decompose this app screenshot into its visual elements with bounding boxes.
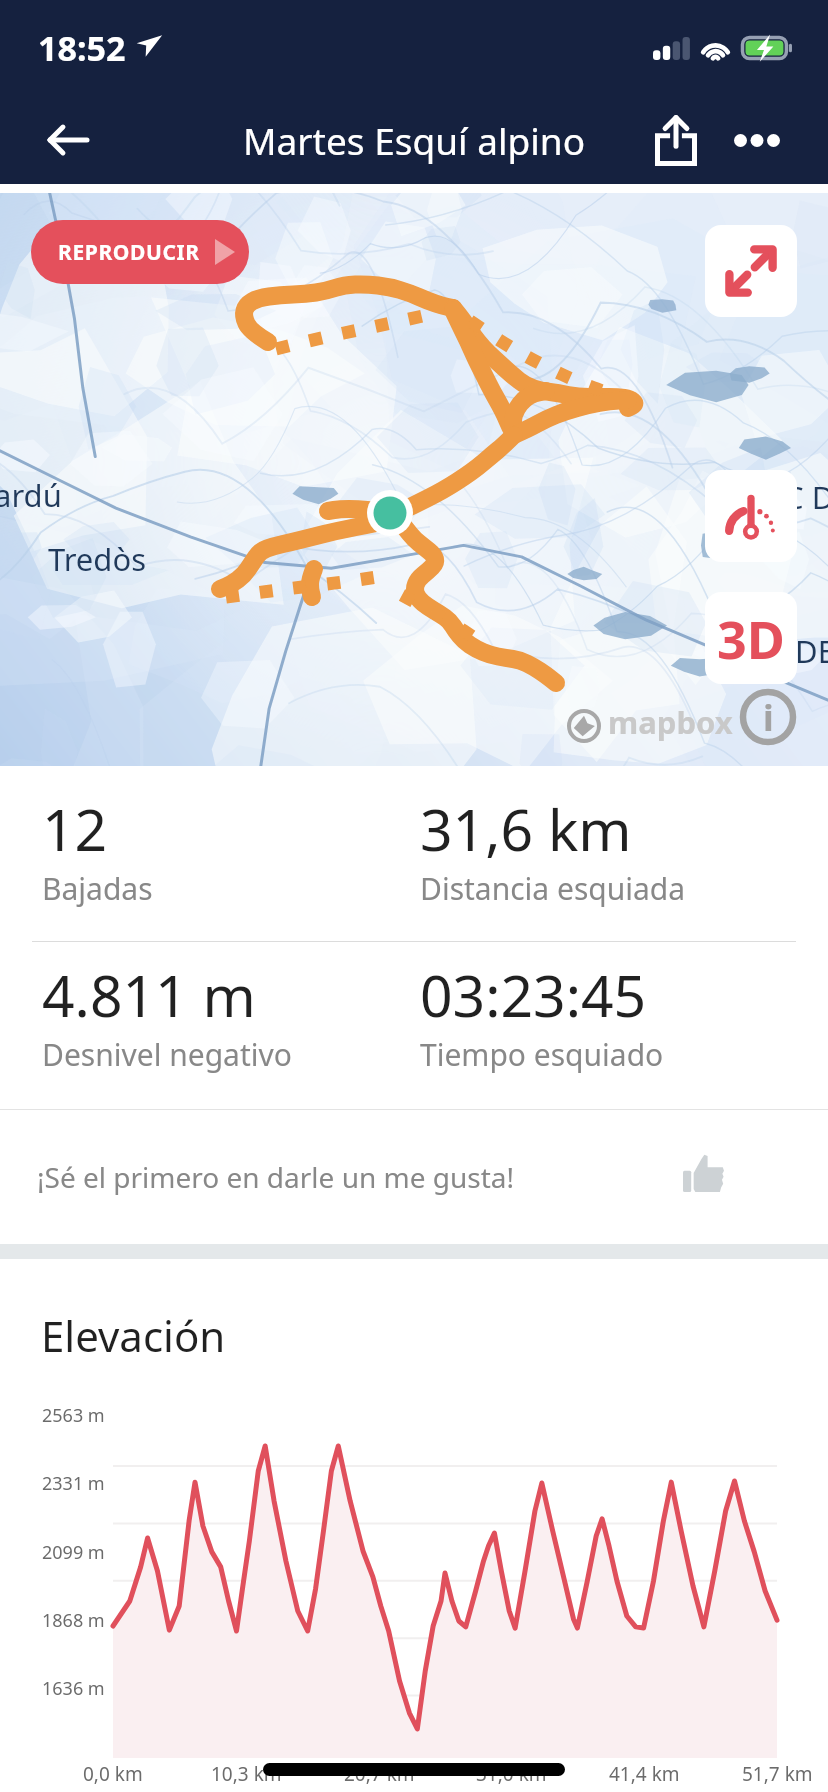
- staticText: REPRODUCIR: [58, 238, 200, 267]
- staticText: 18:52: [38, 25, 126, 71]
- button[interactable]: REPRODUCIR: [31, 220, 249, 284]
- staticText: i: [763, 693, 774, 742]
- button[interactable]: ¡Sé el primero en darle un me gusta!: [0, 1110, 828, 1244]
- staticText: ardú: [0, 474, 62, 516]
- button[interactable]: More options: [717, 100, 797, 180]
- staticText: Desnivel negativo: [42, 1034, 292, 1075]
- staticText: 41,4 km: [609, 1761, 680, 1787]
- button[interactable]: 3D view: [705, 592, 797, 684]
- staticText: 10,3 km: [211, 1761, 282, 1787]
- button[interactable]: Speed: [705, 470, 797, 562]
- staticText: 2331 m: [42, 1471, 105, 1496]
- staticText: 1636 m: [42, 1676, 105, 1701]
- button[interactable]: Back: [26, 98, 110, 182]
- staticText: 20,7 km: [344, 1761, 415, 1787]
- staticText: Tiempo esquiado: [420, 1034, 664, 1075]
- staticText: 51,7 km: [742, 1761, 813, 1787]
- staticText: 3D: [717, 603, 785, 674]
- staticText: Martes Esquí alpino: [243, 115, 586, 165]
- staticText: 03:23:45: [420, 956, 647, 1034]
- button[interactable]: Expand map: [705, 225, 797, 317]
- staticText: 0,0 km: [83, 1761, 143, 1787]
- staticText: Elevación: [41, 1307, 226, 1364]
- staticText: 31,6 km: [420, 790, 632, 868]
- staticText: DE: [795, 630, 828, 672]
- staticText: 31,0 km: [476, 1761, 547, 1787]
- staticText: 4.811 m: [42, 956, 256, 1034]
- staticText: ¡Sé el primero en darle un me gusta!: [37, 1158, 515, 1196]
- staticText: Distancia esquiada: [420, 868, 686, 909]
- button[interactable]: Share: [636, 100, 716, 180]
- staticText: Bajadas: [42, 868, 153, 909]
- button[interactable]: Map info: [740, 689, 796, 745]
- staticText: 2563 m: [42, 1403, 105, 1428]
- staticText: 2099 m: [42, 1540, 105, 1565]
- staticText: 12: [42, 790, 108, 868]
- staticText: C D: [784, 476, 828, 518]
- staticText: Tredòs: [48, 538, 147, 580]
- staticText: mapbox: [608, 701, 733, 743]
- staticText: 1868 m: [42, 1608, 105, 1633]
